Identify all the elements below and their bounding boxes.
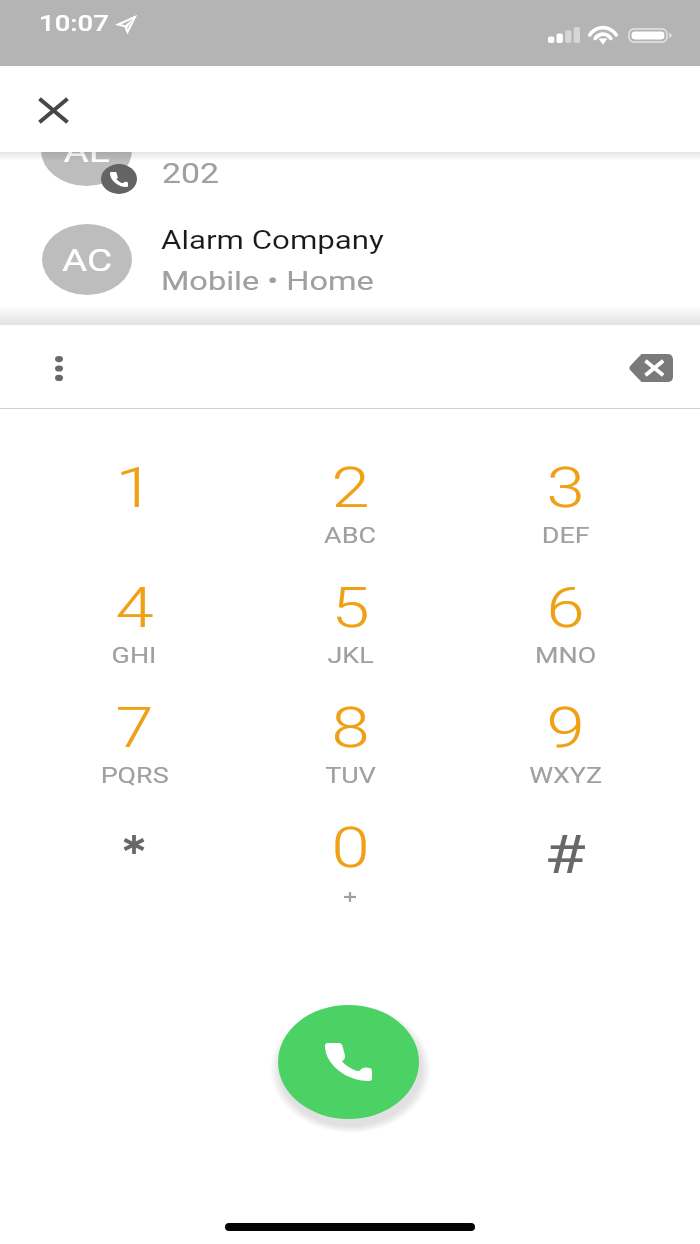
button[interactable]: Close <box>11 73 95 145</box>
button[interactable]: Call <box>278 1005 419 1119</box>
button[interactable] <box>26 796 242 916</box>
button[interactable] <box>457 556 673 676</box>
button[interactable] <box>457 796 673 916</box>
staticText: 9 <box>546 696 585 760</box>
staticText: PQRS <box>100 763 169 788</box>
staticText: 1 <box>115 456 154 520</box>
staticText: WXYZ <box>529 763 603 788</box>
staticText: 5 <box>331 576 370 640</box>
staticText: 6 <box>546 576 585 640</box>
staticText: 10:07 <box>39 11 109 37</box>
staticText: DEF <box>541 523 590 548</box>
staticText: 8 <box>331 696 370 760</box>
staticText: Alarm Company <box>161 226 385 255</box>
staticText: 202 <box>162 158 219 190</box>
staticText: 2 <box>331 456 370 520</box>
staticText: GHI <box>111 643 156 668</box>
button[interactable] <box>26 676 242 796</box>
button[interactable]: Backspace <box>614 332 687 404</box>
staticText: AL <box>63 133 110 169</box>
staticText: Mobile • Home <box>161 266 375 296</box>
staticText: 4 <box>115 576 154 640</box>
button[interactable] <box>242 676 458 796</box>
button[interactable]: Contact 202 <box>0 152 700 207</box>
staticText: 3 <box>546 456 585 520</box>
staticText: TUV <box>325 763 376 788</box>
button[interactable] <box>242 556 458 676</box>
button[interactable] <box>457 436 673 556</box>
staticText: JKL <box>327 643 374 668</box>
staticText: AC <box>62 242 113 278</box>
staticText: 0 <box>331 816 370 880</box>
button[interactable]: More options <box>22 332 95 404</box>
staticText: MNO <box>535 643 596 668</box>
button[interactable] <box>26 436 242 556</box>
button[interactable] <box>26 556 242 676</box>
staticText: 7 <box>115 696 154 760</box>
button[interactable] <box>0 207 700 311</box>
staticText: ABC <box>324 523 376 548</box>
button[interactable] <box>242 796 458 916</box>
button[interactable] <box>457 676 673 796</box>
staticText: # <box>544 823 586 886</box>
button[interactable] <box>242 436 458 556</box>
